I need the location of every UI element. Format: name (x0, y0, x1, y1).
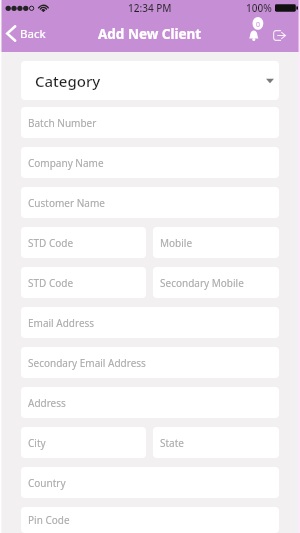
button[interactable]: Logout (269, 25, 290, 46)
button[interactable]: STD Code (21, 267, 146, 298)
staticText: Company Name (28, 156, 104, 170)
staticText: 12:34 PM (128, 1, 172, 15)
button[interactable]: Secondary Mobile (153, 267, 279, 298)
staticText: Secondary Mobile (160, 276, 244, 290)
staticText: Category (35, 71, 101, 91)
staticText: Customer Name (28, 196, 105, 210)
button[interactable]: Notifications (244, 8, 265, 41)
button[interactable]: STD Code (21, 227, 146, 258)
staticText: Batch Number (28, 116, 97, 130)
button[interactable]: Company Name (21, 147, 279, 178)
staticText: STD Code (28, 276, 74, 290)
staticText: City (28, 436, 46, 450)
staticText: 0 (256, 20, 261, 30)
staticText: Country (28, 476, 66, 490)
staticText: Mobile (160, 236, 193, 250)
staticText: Add New Client (98, 25, 202, 43)
button[interactable]: Country (21, 467, 279, 498)
staticText: STD Code (28, 236, 74, 250)
staticText: Pin Code (28, 513, 70, 527)
button[interactable]: Secondary Email Address (21, 347, 279, 378)
staticText: Secondary Email Address (28, 356, 146, 370)
staticText: 100% (246, 1, 272, 15)
button[interactable]: State (153, 427, 279, 458)
button[interactable]: Pin Code (21, 507, 279, 533)
button[interactable]: Address (21, 387, 279, 418)
staticText: State (160, 436, 184, 450)
staticText: Address (28, 396, 66, 410)
staticText: Email Address (28, 316, 95, 330)
button[interactable]: Back (0, 21, 54, 46)
button[interactable]: Category (21, 61, 279, 100)
button[interactable]: Batch Number (21, 107, 279, 138)
button[interactable]: Email Address (21, 307, 279, 338)
staticText: Back (20, 26, 46, 42)
button[interactable]: Customer Name (21, 187, 279, 218)
button[interactable]: City (21, 427, 146, 458)
button[interactable]: Mobile (153, 227, 279, 258)
